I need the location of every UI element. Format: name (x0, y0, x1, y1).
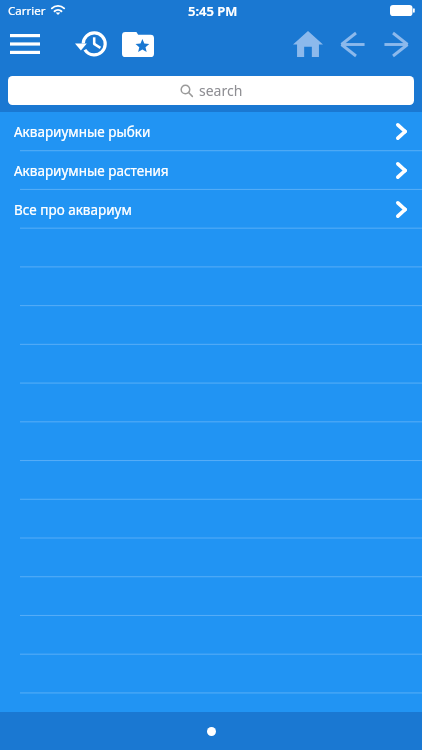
button[interactable]: Forward (375, 23, 417, 65)
button[interactable]: Аквариумные рыбки (0, 112, 422, 151)
staticText: Аквариумные рыбки (14, 123, 151, 141)
button[interactable] (0, 580, 422, 619)
button[interactable]: Bookmarks (116, 23, 158, 65)
staticText: 5:45 PM (188, 2, 238, 20)
button[interactable]: Аквариумные растения (0, 151, 422, 190)
button[interactable] (0, 424, 422, 463)
staticText: Аквариумные растения (14, 162, 169, 180)
button[interactable] (0, 463, 422, 502)
button[interactable] (0, 541, 422, 580)
button[interactable]: Menu (4, 23, 46, 65)
staticText: search (199, 81, 243, 100)
button[interactable]: Home (287, 23, 329, 65)
button[interactable] (0, 502, 422, 541)
button[interactable] (0, 229, 422, 268)
button[interactable] (0, 385, 422, 424)
button[interactable]: Все про аквариум (0, 190, 422, 229)
button[interactable]: Back (332, 23, 374, 65)
button[interactable] (0, 268, 422, 307)
button[interactable] (0, 307, 422, 346)
button[interactable]: search (8, 76, 414, 105)
button[interactable] (0, 658, 422, 697)
button[interactable] (0, 346, 422, 385)
button[interactable] (0, 619, 422, 658)
staticText: Carrier (8, 3, 46, 19)
staticText: Все про аквариум (14, 201, 132, 219)
button[interactable]: History (73, 23, 115, 65)
